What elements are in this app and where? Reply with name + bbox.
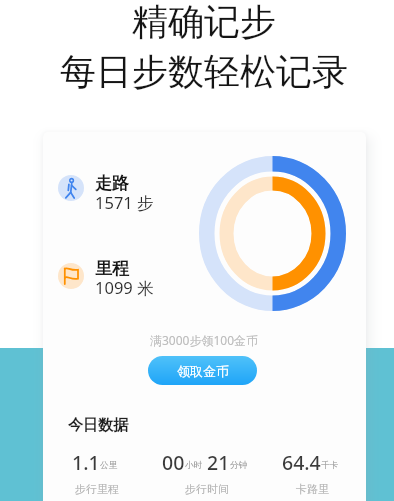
staticText: 卡路里 (296, 482, 329, 496)
staticText: 小时 (185, 460, 203, 471)
staticText: 64.4 (282, 449, 321, 476)
staticText: 步行时间 (185, 482, 229, 496)
staticText: 里程 (95, 258, 129, 279)
staticText: 今日数据 (68, 416, 128, 435)
staticText: 千卡 (321, 460, 339, 471)
staticText: 分钟 (230, 460, 248, 471)
staticText: 步行里程 (75, 482, 119, 496)
staticText: 1099 米 (95, 276, 154, 299)
staticText: 00 (162, 449, 185, 476)
staticText: 每日步数轻松记录 (60, 49, 348, 94)
staticText: 21 (207, 449, 230, 476)
button[interactable]: Distance (58, 263, 84, 289)
staticText: 公里 (100, 460, 118, 471)
staticText: 精确记步 (132, 0, 276, 44)
staticText: 满3000步领100金币 (150, 332, 259, 348)
staticText: 领取金币 (177, 363, 229, 379)
staticText: 1571 步 (95, 191, 154, 214)
staticText: 走路 (95, 173, 129, 194)
staticText: 1.1 (72, 449, 100, 476)
button[interactable]: Steps (58, 175, 84, 201)
button[interactable]: 领取金币 (148, 356, 257, 385)
